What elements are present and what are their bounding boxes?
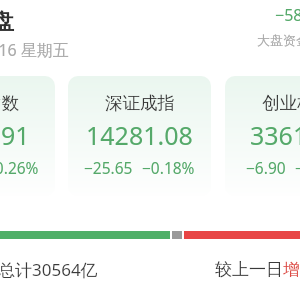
staticText: 09-16 星期五 [0, 39, 69, 61]
staticText: 大盘资金 [257, 32, 300, 48]
staticText: 3361.95 [250, 118, 300, 152]
staticText: −0.26% [0, 157, 39, 178]
staticText: 增 [283, 259, 300, 280]
staticText: 创业板指 [262, 92, 300, 114]
staticText: 上证指数 [0, 92, 19, 114]
staticText: 成交总计30564亿 [0, 258, 98, 281]
staticText: −6.90 [246, 157, 286, 178]
staticText: 14281.08 [86, 118, 193, 152]
button[interactable]: 创业板指 [225, 76, 300, 196]
staticText: −0.18% [142, 157, 195, 178]
staticText: 收盘 [0, 8, 14, 36]
staticText: −25.65 [84, 157, 133, 178]
staticText: 3126.91 [0, 118, 30, 152]
staticText: −586.3 [275, 4, 300, 26]
button[interactable]: 深证成指 [68, 76, 211, 196]
button[interactable]: 上证指数 [0, 76, 55, 196]
staticText: −0.20% [295, 157, 300, 178]
staticText: 较上一日 [215, 259, 283, 280]
staticText: 深证成指 [105, 92, 175, 114]
